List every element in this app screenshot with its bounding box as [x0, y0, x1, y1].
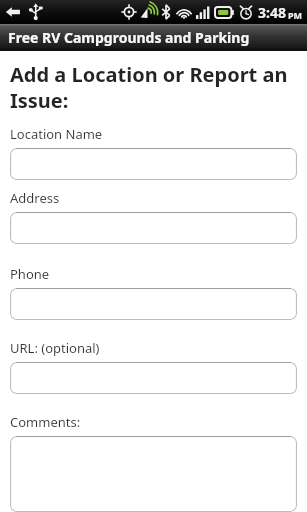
staticText: PM: [288, 9, 303, 21]
button[interactable]: Phone: [10, 288, 297, 320]
button[interactable]: URL: (optional): [10, 362, 297, 394]
button[interactable]: Address: [10, 212, 297, 244]
button[interactable]: Location Name: [10, 148, 297, 180]
staticText: Address: [10, 189, 60, 207]
staticText: Phone: [10, 265, 50, 283]
staticText: 3:48: [258, 3, 286, 22]
staticText: Free RV Campgrounds and Parking: [8, 28, 250, 47]
staticText: Add a Location or Report an Issue:: [10, 61, 297, 113]
staticText: Comments:: [10, 413, 81, 431]
button[interactable]: Comments:: [10, 436, 297, 512]
staticText: Location Name: [10, 125, 103, 143]
staticText: URL: (optional): [10, 339, 100, 357]
